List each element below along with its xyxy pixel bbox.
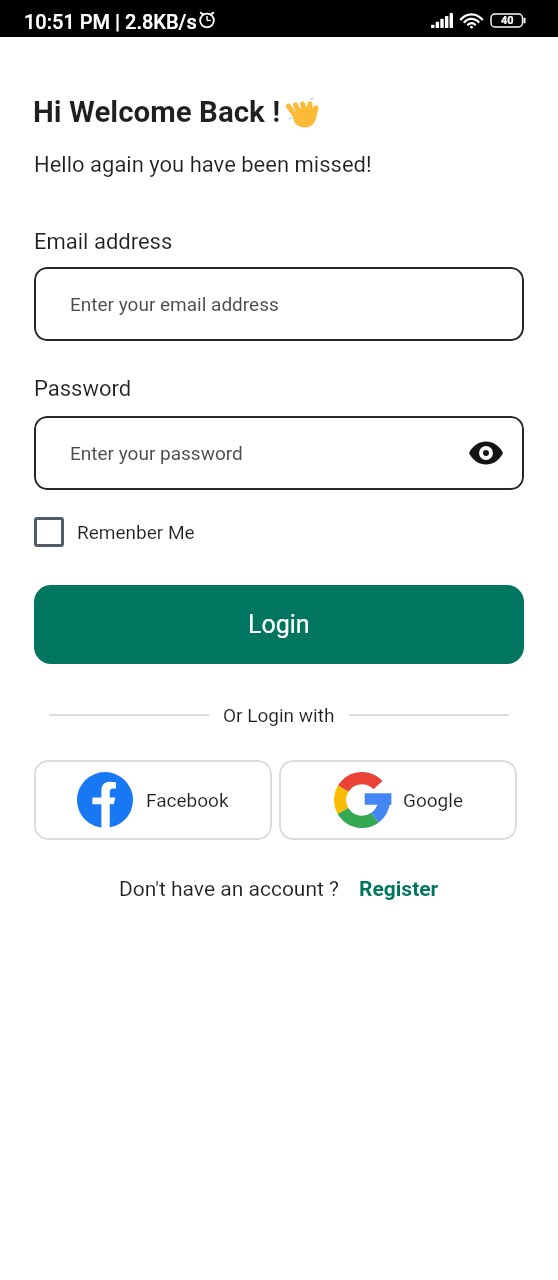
button[interactable]: Enter your password bbox=[34, 416, 524, 490]
staticText: Or Login with bbox=[223, 704, 335, 726]
staticText: Don't have an account ? bbox=[119, 877, 340, 902]
button[interactable]: Login bbox=[34, 585, 524, 664]
staticText: 40 bbox=[501, 14, 514, 27]
button[interactable]: Google bbox=[279, 760, 517, 840]
staticText: 10:51 PM | 2.8KB/s bbox=[24, 10, 197, 33]
button[interactable]: Enter your email address bbox=[34, 267, 524, 341]
staticText: Facebook bbox=[146, 789, 229, 811]
staticText: Enter your email address bbox=[70, 293, 279, 315]
staticText: Google bbox=[403, 789, 463, 811]
staticText: Login bbox=[248, 610, 310, 639]
button[interactable]: Facebook bbox=[34, 760, 272, 840]
staticText: Email address bbox=[34, 229, 173, 255]
staticText: Hi Welcome Back ! bbox=[33, 95, 281, 130]
button[interactable]: Remenber Me bbox=[34, 511, 195, 553]
button[interactable]: Show password bbox=[466, 433, 506, 473]
staticText: Password bbox=[34, 376, 132, 402]
staticText: Hello again you have been missed! bbox=[34, 152, 372, 178]
staticText: Remenber Me bbox=[77, 521, 195, 543]
staticText: Enter your password bbox=[70, 442, 243, 464]
button[interactable]: Register bbox=[359, 877, 439, 902]
